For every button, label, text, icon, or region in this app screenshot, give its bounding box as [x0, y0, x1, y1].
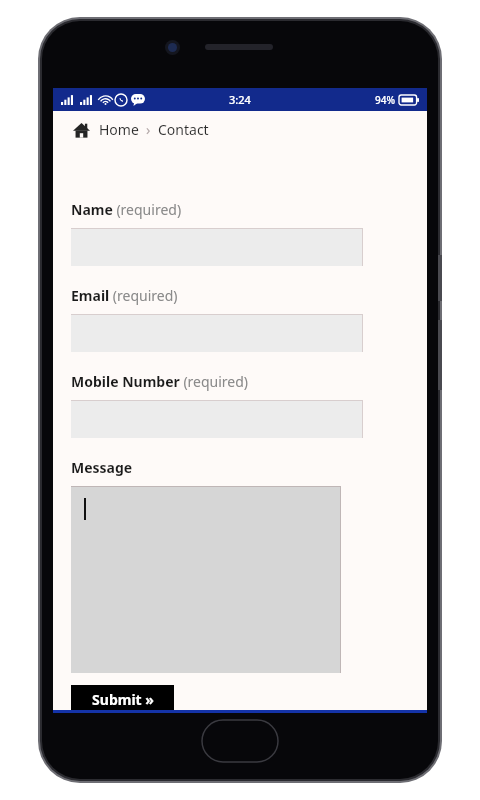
staticText: Email (required)	[71, 286, 178, 305]
staticText: Contact	[158, 120, 209, 139]
button[interactable]	[71, 314, 363, 352]
staticText: 94%	[375, 93, 395, 107]
staticText: Home	[99, 120, 139, 139]
button[interactable]: Home	[99, 120, 139, 139]
button[interactable]	[71, 486, 341, 673]
staticText: 3:24	[229, 92, 251, 107]
staticText: ›	[146, 120, 151, 139]
staticText: Mobile Number (required)	[71, 372, 249, 391]
button[interactable]	[71, 228, 363, 266]
button[interactable]: Submit »	[71, 685, 174, 713]
staticText: Submit »	[92, 690, 154, 709]
button[interactable]: Home	[71, 120, 91, 140]
staticText: Name (required)	[71, 200, 182, 219]
button[interactable]	[71, 400, 363, 438]
staticText: Message	[71, 458, 133, 477]
